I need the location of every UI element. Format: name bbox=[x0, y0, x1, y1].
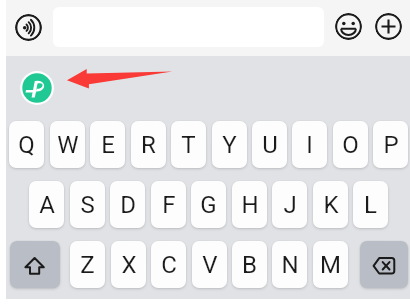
button[interactable]: K bbox=[313, 181, 348, 228]
button[interactable]: N bbox=[272, 241, 307, 288]
button[interactable]: H bbox=[232, 181, 267, 228]
button[interactable]: Y bbox=[212, 121, 247, 168]
button[interactable]: Pushbullet bbox=[19, 70, 55, 106]
staticText: E bbox=[101, 131, 115, 159]
staticText: U bbox=[262, 131, 278, 159]
button[interactable]: R bbox=[131, 121, 166, 168]
button[interactable]: Z bbox=[70, 241, 105, 288]
staticText: H bbox=[241, 191, 259, 219]
staticText: J bbox=[283, 191, 297, 219]
staticText: W bbox=[57, 131, 79, 159]
staticText: C bbox=[161, 251, 177, 279]
button[interactable]: V bbox=[192, 241, 227, 288]
button[interactable]: O bbox=[333, 121, 368, 168]
button[interactable]: U bbox=[252, 121, 287, 168]
staticText: V bbox=[202, 251, 218, 279]
button[interactable]: G bbox=[191, 181, 226, 228]
staticText: M bbox=[320, 251, 341, 279]
staticText: Y bbox=[222, 131, 237, 159]
staticText: D bbox=[120, 191, 136, 219]
button[interactable]: B bbox=[232, 241, 267, 288]
staticText: Q bbox=[18, 131, 35, 159]
button[interactable]: F bbox=[151, 181, 186, 228]
button[interactable]: A bbox=[29, 181, 64, 228]
staticText: A bbox=[39, 191, 55, 219]
staticText: L bbox=[364, 191, 377, 219]
button[interactable]: J bbox=[272, 181, 307, 228]
staticText: P bbox=[383, 131, 399, 159]
staticText: K bbox=[323, 191, 339, 219]
staticText: S bbox=[80, 191, 95, 219]
button[interactable]: C bbox=[151, 241, 186, 288]
button[interactable]: E bbox=[90, 121, 125, 168]
button[interactable]: S bbox=[70, 181, 105, 228]
button[interactable]: D bbox=[110, 181, 145, 228]
button[interactable]: Add attachment bbox=[375, 13, 402, 40]
staticText: R bbox=[141, 131, 156, 159]
button[interactable]: Q bbox=[9, 121, 44, 168]
button[interactable]: Emoji bbox=[335, 13, 362, 40]
staticText: F bbox=[162, 191, 176, 219]
staticText: O bbox=[342, 131, 359, 159]
button[interactable]: I bbox=[292, 121, 327, 168]
button[interactable]: Voice message bbox=[15, 14, 42, 41]
staticText: G bbox=[200, 191, 217, 219]
button[interactable]: P bbox=[373, 121, 408, 168]
button[interactable]: T bbox=[171, 121, 206, 168]
staticText: T bbox=[181, 131, 196, 159]
button[interactable]: M bbox=[313, 241, 348, 288]
staticText: X bbox=[121, 251, 137, 279]
staticText: Z bbox=[80, 251, 95, 279]
button[interactable]: L bbox=[353, 181, 388, 228]
button[interactable]: Shift bbox=[10, 241, 60, 288]
staticText: B bbox=[242, 251, 257, 279]
button[interactable]: W bbox=[50, 121, 85, 168]
staticText: N bbox=[281, 251, 299, 279]
button[interactable]: X bbox=[111, 241, 146, 288]
staticText: I bbox=[306, 131, 313, 159]
button[interactable]: Backspace bbox=[360, 241, 408, 288]
